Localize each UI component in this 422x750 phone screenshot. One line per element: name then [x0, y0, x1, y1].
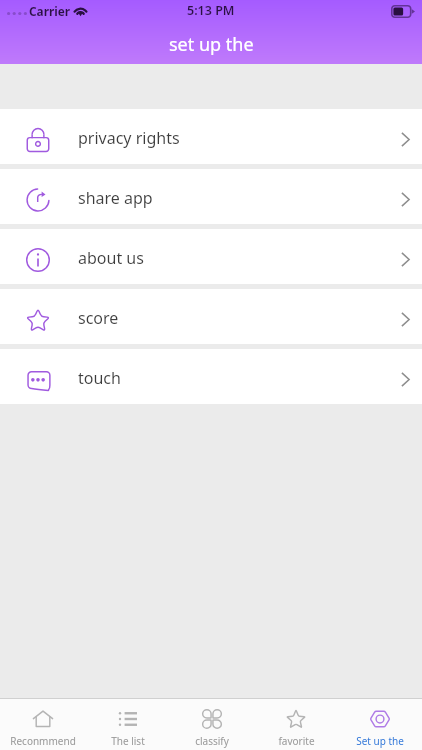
staticText: privacy rights	[78, 127, 180, 149]
staticText: share app	[78, 187, 153, 209]
staticText: Carrier	[29, 3, 71, 19]
button[interactable]: about us	[0, 229, 422, 284]
button[interactable]: favorite	[254, 699, 338, 750]
button[interactable]: score	[0, 289, 422, 344]
staticText: Set up the	[356, 734, 404, 748]
staticText: score	[78, 307, 119, 329]
button[interactable]: The list	[85, 699, 170, 750]
staticText: about us	[78, 247, 144, 269]
button[interactable]: privacy rights	[0, 109, 422, 164]
staticText: favorite	[278, 734, 315, 748]
button[interactable]: Set up the	[338, 699, 422, 750]
button[interactable]: share app	[0, 169, 422, 224]
button[interactable]: classify	[170, 699, 254, 750]
staticText: touch	[78, 367, 121, 389]
button[interactable]: touch	[0, 349, 422, 404]
staticText: The list	[111, 734, 145, 748]
staticText: 5:13 PM	[187, 2, 235, 19]
button[interactable]: Reconmmend	[0, 699, 85, 750]
staticText: classify	[195, 734, 229, 748]
staticText: Reconmmend	[10, 734, 76, 748]
staticText: set up the	[169, 32, 254, 57]
